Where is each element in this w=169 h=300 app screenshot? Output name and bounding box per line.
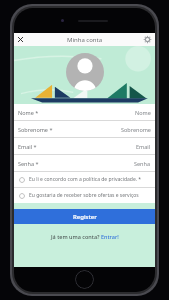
button[interactable]: Register [14,209,155,224]
staticText: Register [73,213,97,221]
staticText: Email [136,143,151,150]
staticText: Eu gostaria de receber sobre ofertas e s… [29,192,139,199]
staticText: Já tem uma conta? [51,233,101,240]
staticText: Nome * [18,109,39,116]
staticText: Nome [135,109,151,116]
button[interactable]: Eu gostaria de receber sobre ofertas e s… [14,188,155,203]
staticText: Minha conta [67,36,103,44]
button[interactable]: Sobrenome * [14,121,155,137]
button[interactable]: Nome * [14,104,155,120]
button[interactable]: Settings [142,34,153,45]
staticText: Senha [134,160,151,167]
button[interactable]: Close [15,34,26,45]
button[interactable]: Senha * [14,155,155,171]
staticText: Email * [18,143,37,150]
button[interactable]: Já tem uma conta? [14,230,155,242]
staticText: Eu li e concordo com a política de priva… [29,176,142,183]
staticText: Sobrenome [121,126,151,133]
staticText: Sobrenome * [18,126,53,133]
button[interactable]: Profile photo [66,53,104,91]
button[interactable]: Eu li e concordo com a política de priva… [14,172,155,187]
staticText: Senha * [18,160,39,167]
staticText: Entrar! [101,233,119,240]
button[interactable]: Email * [14,138,155,154]
